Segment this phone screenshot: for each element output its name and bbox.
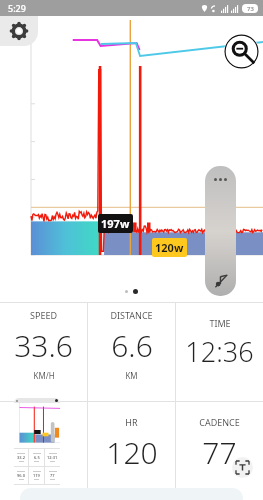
- button[interactable]: Zoom out: [224, 34, 259, 69]
- staticText: 6.6: [111, 325, 153, 366]
- staticText: DISTANCE: [110, 309, 153, 321]
- staticText: 120: [106, 432, 158, 473]
- staticText: 5:29: [8, 2, 26, 14]
- button[interactable]: Settings: [0, 16, 38, 46]
- staticText: CADENCE: [199, 416, 240, 428]
- staticText: 96.0: [17, 473, 25, 478]
- staticText: 197w: [101, 216, 130, 231]
- button[interactable]: TIME: [176, 303, 263, 401]
- button[interactable]: 3: [0, 402, 87, 500]
- staticText: KM: [125, 370, 138, 381]
- staticText: 6.5: [34, 455, 40, 460]
- button[interactable]: DISTANCE: [88, 303, 175, 401]
- staticText: 12:31: [47, 455, 58, 460]
- staticText: 120w: [155, 240, 184, 255]
- staticText: 33.6: [14, 325, 73, 366]
- staticText: KM/H: [33, 370, 55, 381]
- staticText: 119: [33, 473, 40, 478]
- staticText: 3: [35, 408, 53, 449]
- staticText: 77: [50, 473, 55, 478]
- button[interactable]: SPEED: [0, 303, 87, 401]
- staticText: 33.2: [17, 455, 25, 460]
- staticText: TIME: [209, 317, 231, 329]
- staticText: SPEED: [30, 309, 57, 321]
- staticText: 73: [247, 5, 254, 13]
- staticText: 77: [202, 432, 237, 473]
- button[interactable]: Screenshot preview: [14, 398, 60, 490]
- staticText: 12:36: [185, 333, 254, 370]
- button[interactable]: Select text: [232, 457, 253, 478]
- button[interactable]: CADENCE: [176, 402, 263, 500]
- staticText: HR: [125, 416, 138, 428]
- button[interactable]: HR: [88, 402, 175, 500]
- button[interactable]: Panel: [205, 166, 236, 296]
